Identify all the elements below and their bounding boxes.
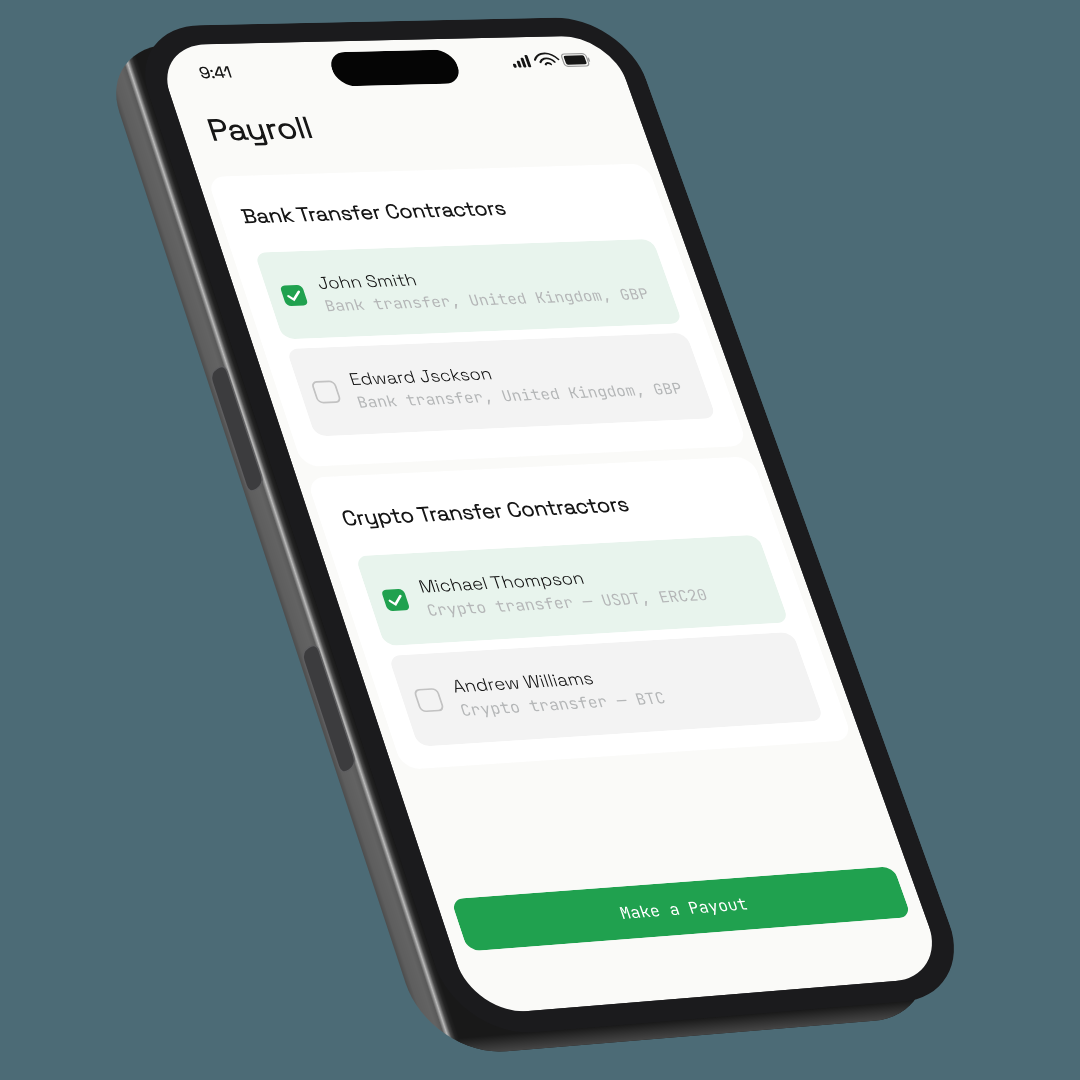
staticText: Edward Jsckson — [104, 374, 245, 397]
button[interactable]: Michael Thompson — [52, 569, 455, 662]
button[interactable]: John Smith — [52, 248, 455, 341]
staticText: Bank transfer, United Kingdom, GBP — [104, 297, 431, 318]
button[interactable]: Edward Jsckson — [52, 351, 455, 444]
staticText: Bank transfer, United Kingdom, GBP — [104, 400, 431, 421]
staticText: Bank Transfer Contractors — [52, 195, 317, 222]
staticText: Crypto Transfer Contractors — [52, 516, 336, 543]
button[interactable]: Make a Payout — [35, 917, 472, 969]
button[interactable]: Andrew Williams — [52, 672, 455, 765]
staticText: John Smith — [104, 271, 203, 294]
staticText: Crypto transfer — USDT, ERC20 — [104, 618, 383, 639]
staticText: Payroll — [47, 95, 150, 136]
